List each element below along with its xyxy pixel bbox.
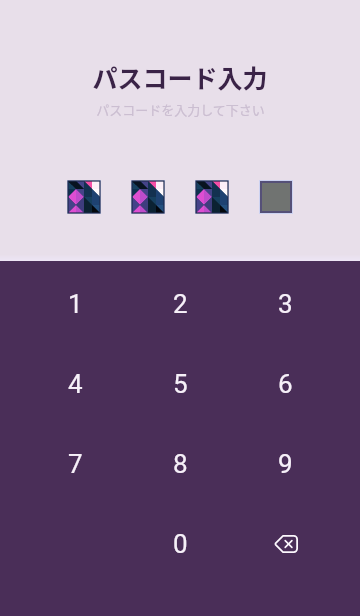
staticText: 2 <box>173 289 188 319</box>
staticText: 9 <box>278 449 293 479</box>
button[interactable]: Delete <box>233 504 338 584</box>
button[interactable]: 8 <box>128 424 233 504</box>
staticText: 4 <box>68 369 83 399</box>
staticText: 0 <box>173 529 188 559</box>
staticText: 7 <box>68 449 83 479</box>
button[interactable]: 4 <box>22 344 128 424</box>
staticText: パスコード入力 <box>92 59 268 95</box>
staticText: 5 <box>173 369 188 399</box>
button[interactable]: 6 <box>233 344 338 424</box>
staticText: 1 <box>68 289 83 319</box>
staticText: 6 <box>278 369 293 399</box>
staticText: パスコードを入力して下さい <box>96 100 265 119</box>
button[interactable]: 9 <box>233 424 338 504</box>
button[interactable]: 3 <box>233 264 338 344</box>
button[interactable]: 7 <box>22 424 128 504</box>
button[interactable]: 1 <box>22 264 128 344</box>
staticText: 3 <box>278 289 293 319</box>
button[interactable]: 2 <box>128 264 233 344</box>
button[interactable]: 5 <box>128 344 233 424</box>
staticText: 8 <box>173 449 188 479</box>
button[interactable]: 0 <box>128 504 233 584</box>
